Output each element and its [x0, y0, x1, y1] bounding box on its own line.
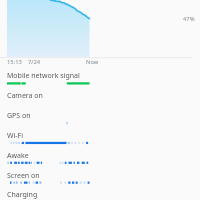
staticText: Wi-Fi: [7, 131, 24, 141]
button[interactable]: GPS on: [0, 111, 200, 129]
staticText: GPS on: [7, 111, 31, 121]
button[interactable]: Awake: [0, 151, 200, 169]
button[interactable]: Wi-Fi: [0, 131, 200, 149]
button[interactable]: Charging: [0, 190, 200, 200]
staticText: Now: [86, 58, 99, 66]
staticText: Screen on: [7, 171, 40, 181]
staticText: Charging: [7, 190, 38, 200]
button[interactable]: Camera on: [0, 91, 200, 109]
staticText: 7/24: [28, 58, 41, 66]
button[interactable]: Screen on: [0, 171, 200, 189]
staticText: 47%: [183, 15, 195, 23]
staticText: Camera on: [7, 91, 43, 101]
staticText: Awake: [7, 151, 29, 161]
staticText: 15:13: [7, 58, 22, 66]
button[interactable]: Mobile network signal: [0, 71, 200, 89]
staticText: Mobile network signal: [7, 71, 80, 81]
